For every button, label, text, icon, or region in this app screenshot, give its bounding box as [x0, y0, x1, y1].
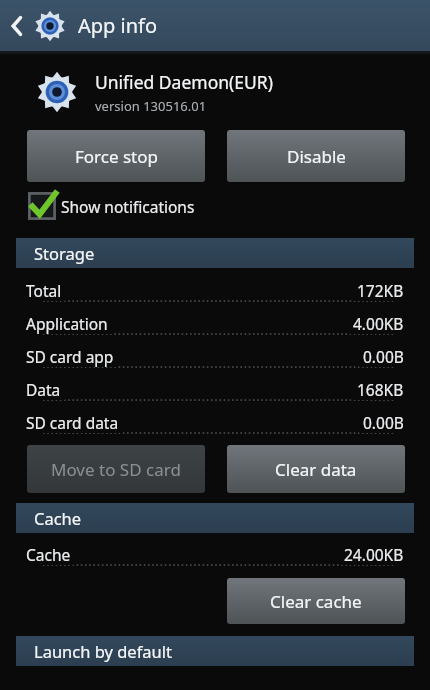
- staticText: 4.00KB: [353, 313, 404, 334]
- staticText: SD card app: [26, 346, 114, 367]
- button[interactable]: Clear data: [227, 445, 405, 493]
- staticText: 172KB: [357, 280, 404, 301]
- staticText: Storage: [34, 242, 95, 264]
- button[interactable]: Clear cache: [227, 578, 405, 624]
- staticText: Data: [26, 379, 61, 400]
- staticText: Force stop: [75, 145, 158, 168]
- button[interactable]: Move to SD card: [27, 445, 205, 493]
- button[interactable]: Back: [0, 0, 34, 51]
- staticText: Launch by default: [34, 640, 173, 662]
- staticText: 24.00KB: [344, 544, 404, 565]
- staticText: Cache: [26, 544, 71, 565]
- staticText: Move to SD card: [51, 458, 181, 481]
- staticText: 0.00B: [363, 412, 404, 433]
- staticText: SD card data: [26, 412, 119, 433]
- staticText: 0.00B: [363, 346, 404, 367]
- staticText: 168KB: [357, 379, 404, 400]
- button[interactable]: Force stop: [27, 130, 205, 182]
- button[interactable]: Show notifications: [27, 191, 195, 221]
- button[interactable]: Disable: [227, 130, 405, 182]
- staticText: Application: [26, 313, 108, 334]
- staticText: Unified Daemon(EUR): [95, 70, 273, 94]
- staticText: Total: [26, 280, 62, 301]
- staticText: version 130516.01: [95, 97, 207, 115]
- staticText: Show notifications: [61, 196, 195, 217]
- staticText: Clear cache: [270, 590, 362, 613]
- staticText: Disable: [287, 145, 346, 168]
- staticText: Cache: [34, 507, 82, 529]
- staticText: App info: [78, 12, 158, 39]
- staticText: Clear data: [275, 458, 357, 481]
